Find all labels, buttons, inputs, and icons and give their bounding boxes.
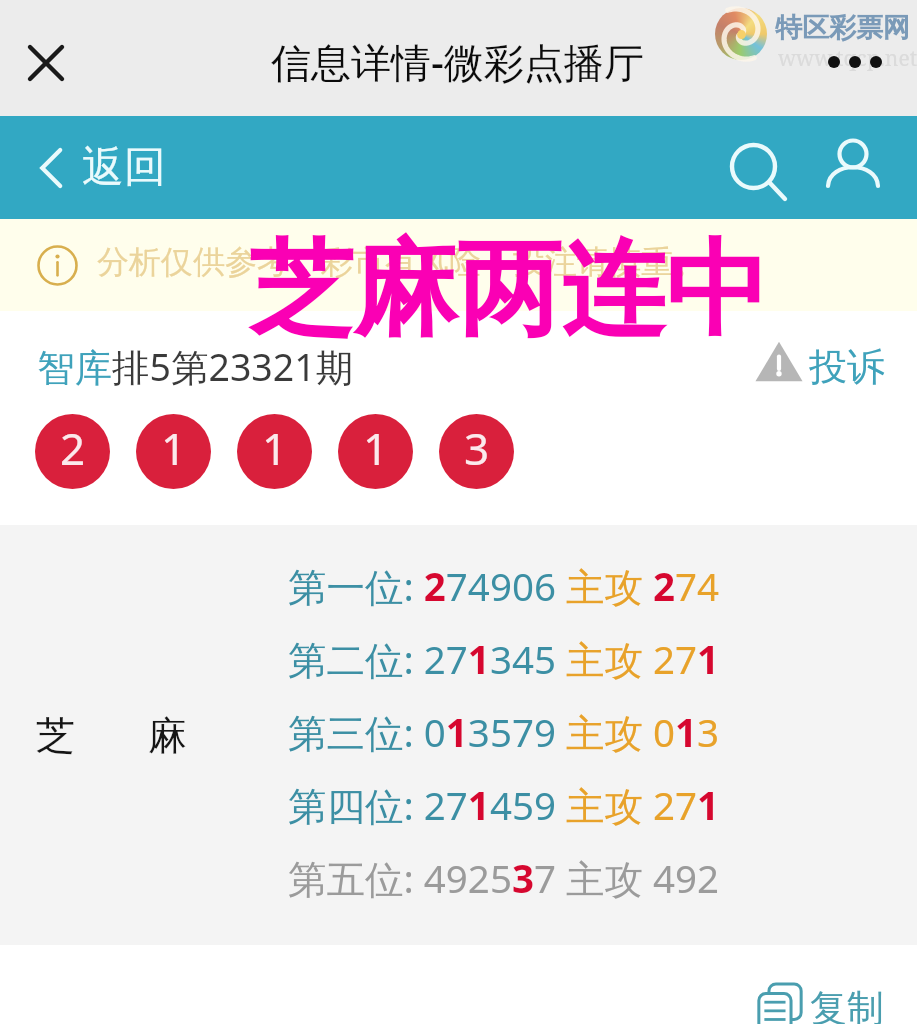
staticText: 复制: [810, 985, 884, 1024]
staticText: 1: [363, 418, 389, 478]
button[interactable]: 投诉: [755, 341, 885, 389]
staticText: 第二位: 271345 主攻 271: [288, 633, 720, 686]
button[interactable]: 1: [136, 414, 211, 489]
staticText: 特区彩票网: [775, 11, 910, 45]
staticText: 第五位: 492537 主攻 492: [288, 852, 720, 905]
button[interactable]: More options: [828, 56, 882, 68]
staticText: 芝: [36, 711, 75, 760]
staticText: 返回: [82, 141, 166, 194]
button[interactable]: Account: [822, 132, 884, 194]
button[interactable]: 复制: [757, 983, 884, 1024]
staticText: 智库排5第23321期: [37, 341, 354, 392]
staticText: 麻: [148, 711, 187, 760]
staticText: 第一位: 274906 主攻 274: [288, 560, 720, 613]
button[interactable]: 1: [338, 414, 413, 489]
staticText: www.tqcp.net: [778, 44, 917, 73]
staticText: 1: [161, 418, 187, 478]
staticText: 3: [464, 418, 490, 478]
button[interactable]: Close: [14, 31, 78, 95]
staticText: 2: [60, 418, 86, 478]
button[interactable]: 3: [439, 414, 514, 489]
button[interactable]: 1: [237, 414, 312, 489]
staticText: 投诉: [809, 343, 885, 391]
staticText: 信息详情-微彩点播厅: [271, 34, 644, 89]
button[interactable]: 返回: [40, 141, 166, 194]
staticText: 第四位: 271459 主攻 271: [288, 779, 720, 832]
button[interactable]: Search: [726, 132, 796, 202]
staticText: 分析仅供参考，彩市有风险，投注请慎重。: [97, 242, 705, 282]
staticText: 1: [262, 418, 288, 478]
staticText: 芝麻两连中: [249, 225, 769, 356]
button[interactable]: 2: [35, 414, 110, 489]
staticText: 第三位: 013579 主攻 013: [288, 706, 720, 759]
